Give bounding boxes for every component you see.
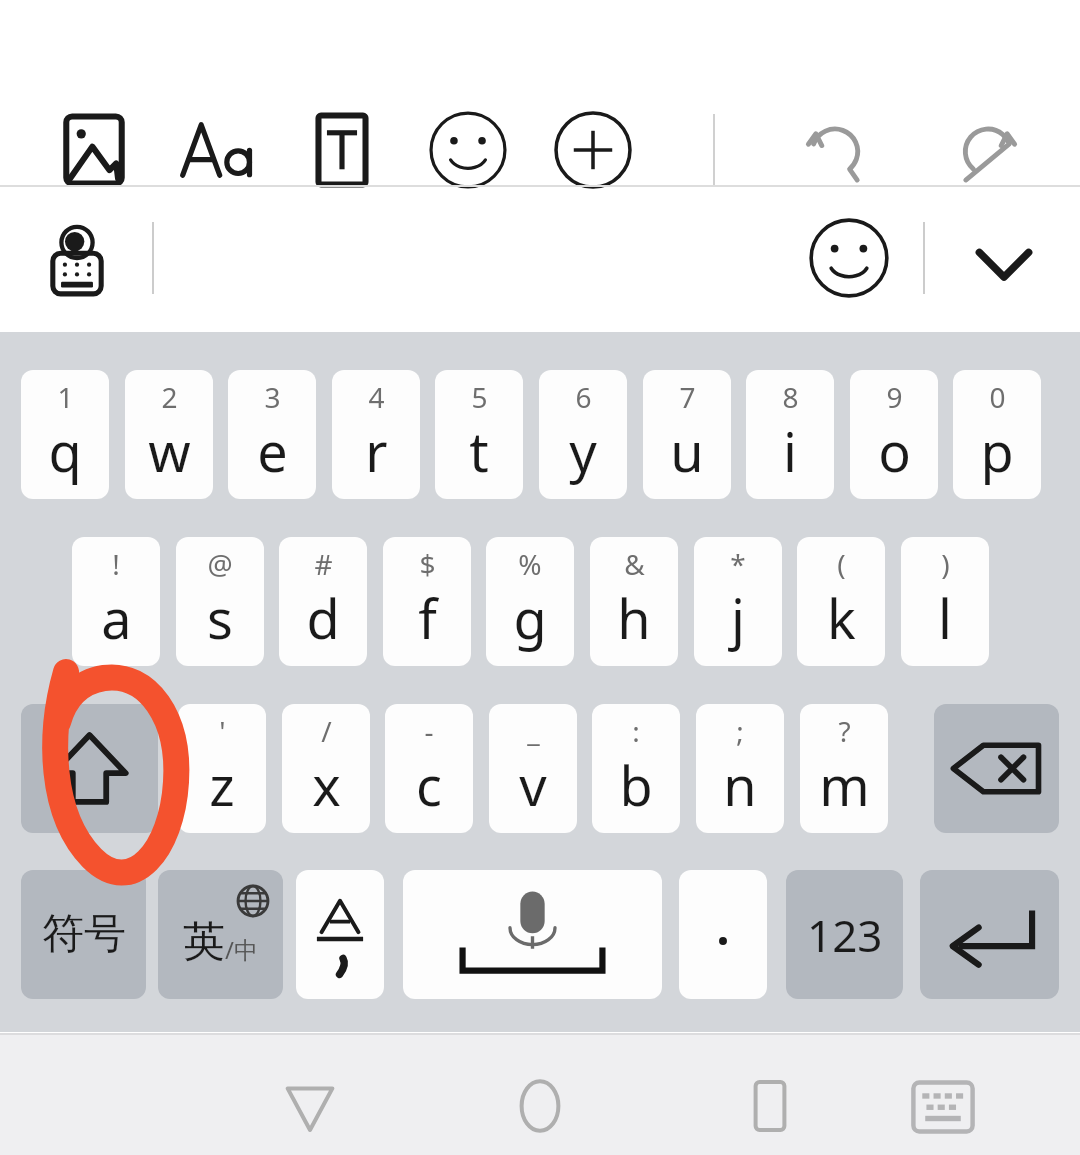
staticText: q [48, 414, 82, 488]
staticText: p [980, 414, 1014, 488]
button[interactable]: Punctuation [296, 870, 384, 999]
button[interactable]: Recents [730, 1066, 810, 1146]
button[interactable]: 7 [643, 370, 731, 499]
button[interactable]: Space [403, 870, 662, 999]
button[interactable]: ' [178, 704, 266, 833]
staticText: n [723, 748, 757, 822]
button[interactable]: ( [797, 537, 885, 666]
staticText: g [513, 581, 547, 655]
button[interactable]: 1 [21, 370, 109, 499]
staticText: 5 [471, 378, 488, 416]
button[interactable]: Emoji [806, 215, 892, 301]
staticText: 6 [575, 378, 592, 416]
staticText: / [321, 712, 332, 750]
staticText: $ [419, 545, 436, 583]
button[interactable]: $ [383, 537, 471, 666]
button[interactable]: ? [800, 704, 888, 833]
button[interactable]: 英 [158, 870, 283, 999]
staticText: ; [736, 712, 744, 750]
staticText: ! [112, 545, 120, 583]
button[interactable]: Change language [38, 219, 116, 297]
button[interactable]: Home [500, 1066, 580, 1146]
staticText: & [624, 545, 645, 583]
staticText: ' [219, 712, 226, 750]
staticText: t [469, 414, 489, 488]
button[interactable]: Undo [793, 108, 877, 192]
button[interactable]: Period [679, 870, 767, 999]
button[interactable]: ! [72, 537, 160, 666]
button[interactable]: Insert image [52, 108, 136, 192]
staticText: 8 [782, 378, 799, 416]
button[interactable]: Add [551, 108, 635, 192]
staticText: 0 [989, 378, 1006, 416]
button[interactable]: 0 [953, 370, 1041, 499]
staticText: 7 [679, 378, 696, 416]
staticText: % [518, 545, 542, 583]
staticText: ? [838, 712, 851, 750]
button[interactable]: _ [489, 704, 577, 833]
button[interactable]: Backspace [934, 704, 1059, 833]
button[interactable]: # [279, 537, 367, 666]
staticText: z [209, 748, 235, 822]
button[interactable]: * [694, 537, 782, 666]
staticText: v [519, 748, 547, 822]
button[interactable]: 5 [435, 370, 523, 499]
button[interactable]: 8 [746, 370, 834, 499]
staticText: h [617, 581, 651, 655]
staticText: 1 [57, 378, 74, 416]
staticText: e [257, 414, 288, 488]
staticText: /中 [225, 933, 258, 966]
staticText: _ [527, 712, 540, 750]
staticText: w [148, 414, 191, 488]
button[interactable]: Shift [21, 704, 158, 833]
button[interactable]: & [590, 537, 678, 666]
button[interactable]: 符号 [21, 870, 146, 999]
button[interactable]: : [592, 704, 680, 833]
staticText: ( [837, 545, 846, 583]
button[interactable]: 4 [332, 370, 420, 499]
button[interactable]: ; [696, 704, 784, 833]
button[interactable]: 123 [786, 870, 903, 999]
button[interactable]: - [385, 704, 473, 833]
staticText: y [569, 414, 597, 488]
button[interactable]: 2 [125, 370, 213, 499]
button[interactable]: Back [270, 1066, 350, 1146]
staticText: u [670, 414, 704, 488]
button[interactable]: 3 [228, 370, 316, 499]
button[interactable]: Hide keyboard [960, 219, 1048, 307]
staticText: l [938, 581, 952, 655]
button[interactable]: Text box [300, 108, 384, 192]
button[interactable]: / [282, 704, 370, 833]
staticText: d [306, 581, 340, 655]
staticText: - [424, 712, 434, 750]
button[interactable]: @ [176, 537, 264, 666]
button[interactable]: Keyboard [903, 1071, 983, 1143]
staticText: : [632, 712, 640, 750]
staticText: * [730, 545, 746, 583]
button[interactable]: % [486, 537, 574, 666]
staticText: 英 [183, 916, 225, 969]
staticText: ) [941, 545, 950, 583]
staticText: s [207, 581, 233, 655]
button[interactable]: Text format [176, 108, 260, 192]
button[interactable]: 6 [539, 370, 627, 499]
staticText: x [312, 748, 341, 822]
button[interactable]: Emoji [426, 108, 510, 192]
staticText: j [731, 581, 745, 655]
staticText: a [101, 581, 132, 655]
button[interactable]: ) [901, 537, 989, 666]
staticText: 9 [886, 378, 903, 416]
staticText: 2 [161, 378, 178, 416]
staticText: # [314, 545, 333, 583]
staticText: c [416, 748, 442, 822]
staticText: f [418, 581, 437, 655]
staticText: o [878, 414, 911, 488]
staticText: r [365, 414, 388, 488]
button[interactable]: 9 [850, 370, 938, 499]
staticText: b [619, 748, 653, 822]
staticText: @ [207, 545, 233, 583]
button[interactable]: Enter [920, 870, 1059, 999]
button[interactable]: Redo [946, 108, 1030, 192]
staticText: m [819, 748, 870, 822]
staticText: 3 [264, 378, 281, 416]
